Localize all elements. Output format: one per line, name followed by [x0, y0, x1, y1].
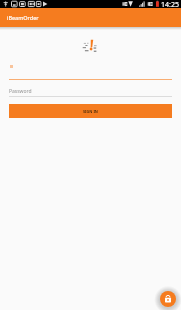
- button[interactable]: Unlock: [160, 291, 176, 307]
- staticText: iBeamOrder: [7, 14, 39, 21]
- staticText: Password: [9, 88, 32, 95]
- button[interactable]: SIGN IN: [9, 104, 172, 118]
- staticText: 14:25: [161, 0, 179, 8]
- staticText: SIGN IN: [83, 109, 98, 114]
- button[interactable]: [9, 56, 172, 79]
